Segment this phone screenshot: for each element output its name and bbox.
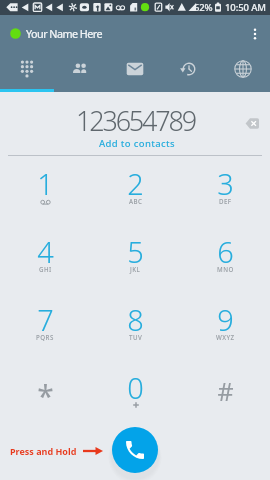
- button[interactable]: 5: [90, 224, 180, 292]
- staticText: 62%: [194, 1, 213, 14]
- staticText: 5: [127, 232, 144, 271]
- staticText: 9: [217, 300, 234, 339]
- staticText: 2: [127, 164, 144, 203]
- button[interactable]: 7: [0, 292, 90, 360]
- staticText: 6: [217, 232, 234, 271]
- button[interactable]: 3: [180, 156, 270, 224]
- staticText: Press and Hold: [10, 445, 77, 457]
- button[interactable]: 9: [180, 292, 270, 360]
- staticText: 0: [127, 368, 144, 407]
- button[interactable]: Add to contacts: [93, 136, 182, 151]
- staticText: Add to contacts: [99, 137, 176, 150]
- button[interactable]: Messages: [108, 15, 162, 92]
- staticText: TUV: [129, 333, 143, 341]
- staticText: 8: [127, 300, 144, 339]
- staticText: ABC: [129, 197, 143, 205]
- staticText: JKL: [130, 265, 141, 273]
- button[interactable]: #: [180, 360, 270, 427]
- staticText: 7: [37, 300, 54, 339]
- staticText: WXYZ: [216, 333, 235, 341]
- button[interactable]: 2: [90, 156, 180, 224]
- button[interactable]: 8: [90, 292, 180, 360]
- button[interactable]: Call: [112, 427, 158, 473]
- button[interactable]: 1: [0, 156, 90, 224]
- button[interactable]: Internet: [216, 15, 270, 92]
- staticText: DEF: [219, 197, 232, 205]
- staticText: 4: [37, 232, 54, 271]
- staticText: Your Name Here: [26, 26, 103, 41]
- staticText: 3: [217, 164, 234, 203]
- staticText: 123654789: [76, 102, 195, 139]
- staticText: MNO: [217, 265, 234, 273]
- staticText: GHI: [39, 265, 52, 273]
- button[interactable]: 0: [90, 360, 180, 427]
- staticText: 1: [37, 164, 54, 203]
- button[interactable]: More options: [241, 20, 269, 48]
- staticText: *: [37, 375, 54, 416]
- staticText: #: [217, 374, 234, 408]
- staticText: 10:50 AM: [225, 1, 266, 14]
- button[interactable]: Call history: [162, 15, 216, 92]
- button[interactable]: Dialpad: [0, 15, 54, 92]
- button[interactable]: 4: [0, 224, 90, 292]
- staticText: PQRS: [36, 333, 54, 341]
- button[interactable]: Contacts: [54, 15, 108, 92]
- button[interactable]: 6: [180, 224, 270, 292]
- button[interactable]: Backspace: [240, 111, 264, 135]
- button[interactable]: *: [0, 360, 90, 427]
